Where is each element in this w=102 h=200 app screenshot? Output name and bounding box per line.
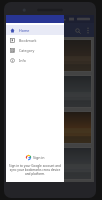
button[interactable] bbox=[8, 39, 92, 72]
button[interactable]: Category bbox=[6, 45, 64, 55]
staticText: Category bbox=[19, 48, 35, 53]
staticText: Info bbox=[19, 58, 26, 63]
staticText: Home bbox=[19, 28, 30, 33]
button[interactable] bbox=[8, 147, 92, 180]
button[interactable]: Home bbox=[6, 25, 64, 35]
button[interactable]: Info bbox=[6, 55, 64, 65]
staticText: Sign in bbox=[33, 155, 45, 160]
staticText: Bookmark bbox=[19, 38, 37, 43]
button[interactable] bbox=[8, 75, 92, 108]
button[interactable]: Bookmark bbox=[6, 35, 64, 45]
button[interactable]: Sign in bbox=[22, 153, 49, 162]
staticText: Sign in to your Google account and sync … bbox=[9, 164, 61, 176]
button[interactable] bbox=[8, 111, 92, 144]
button[interactable]: Search bbox=[72, 25, 83, 36]
button[interactable]: More options bbox=[83, 26, 92, 35]
